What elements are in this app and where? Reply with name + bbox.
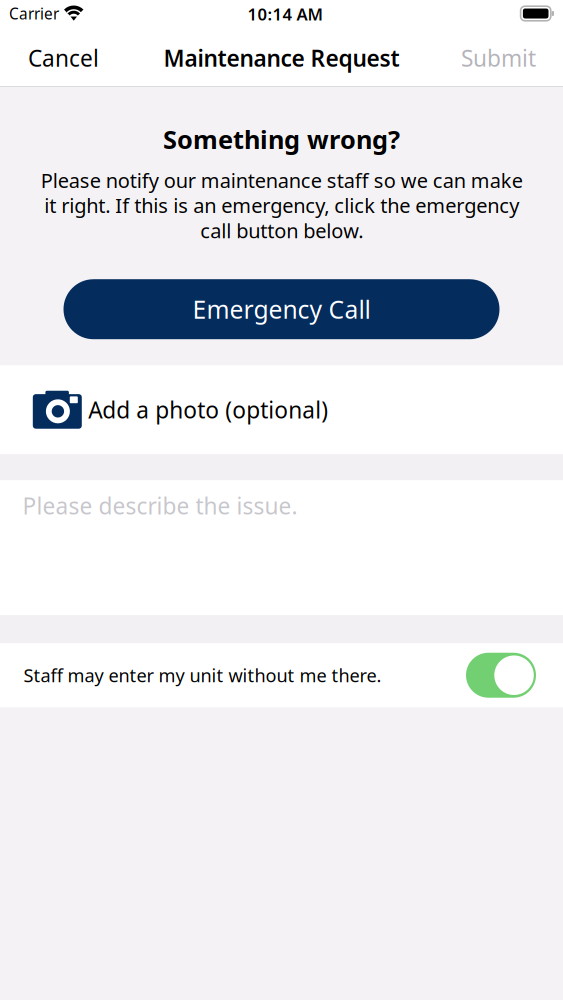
- staticText: 10:14 AM: [247, 3, 322, 25]
- staticText: Staff may enter my unit without me there…: [23, 663, 381, 688]
- staticText: Emergency Call: [192, 292, 370, 326]
- staticText: Something wrong?: [163, 122, 400, 156]
- staticText: Add a photo (optional): [88, 394, 328, 425]
- staticText: Submit: [461, 43, 536, 73]
- button[interactable]: Emergency Call: [63, 279, 499, 339]
- staticText: Please describe the issue.: [22, 490, 297, 521]
- button[interactable]: Cancel: [0, 30, 127, 86]
- staticText: Carrier: [9, 3, 59, 24]
- staticText: Cancel: [28, 43, 99, 73]
- button[interactable]: Submit: [434, 30, 563, 86]
- staticText: Maintenance Request: [163, 43, 399, 73]
- button[interactable]: Staff may enter my unit without me there: [466, 653, 536, 698]
- staticText: Please notify our maintenance staff so w…: [40, 166, 522, 244]
- button[interactable]: Add a photo (optional): [0, 365, 563, 454]
